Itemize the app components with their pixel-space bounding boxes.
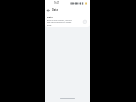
button[interactable]: Back xyxy=(45,7,51,13)
button[interactable]: Manage backup xyxy=(82,19,87,24)
staticText: 9:41 xyxy=(54,1,60,5)
staticText: Back up your photos, contacts xyxy=(47,19,72,21)
staticText: Data xyxy=(47,15,53,18)
staticText: Data xyxy=(52,8,58,11)
staticText: and device settings to Google xyxy=(47,21,72,23)
staticText: Drive. xyxy=(47,24,52,26)
